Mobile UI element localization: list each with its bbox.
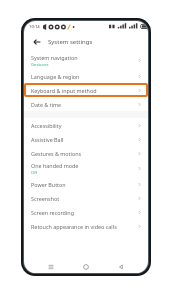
staticText: Retouch appearance in video calls — [31, 223, 117, 230]
button[interactable]: Keyboard & input method — [24, 83, 148, 97]
button[interactable]: Assistive Ball — [24, 132, 148, 146]
button[interactable]: Home — [78, 260, 94, 273]
staticText: Screenshot — [31, 195, 60, 202]
staticText: Gestures — [31, 62, 49, 68]
button[interactable]: Back — [113, 260, 129, 273]
staticText: System settings — [48, 38, 93, 46]
button[interactable]: One handed mode — [24, 160, 148, 177]
staticText: Gestures & motions — [31, 150, 82, 157]
button[interactable]: Power Button — [24, 177, 148, 191]
staticText: Assistive Ball — [31, 136, 64, 143]
staticText: Keyboard & input method — [31, 87, 97, 94]
button[interactable]: Accessibility — [24, 118, 148, 132]
staticText: One handed mode — [31, 162, 79, 169]
staticText: Accessibility — [31, 122, 62, 129]
button[interactable]: Gestures & motions — [24, 146, 148, 160]
staticText: Screen recording — [31, 209, 74, 216]
staticText: Off — [31, 170, 38, 176]
button[interactable]: Back — [30, 35, 44, 49]
staticText: Date & time — [31, 101, 62, 108]
button[interactable]: Retouch appearance in video calls — [24, 219, 148, 233]
staticText: Language & region — [31, 73, 80, 80]
button[interactable]: Screen recording — [24, 205, 148, 219]
staticText: System navigation — [31, 54, 78, 61]
button[interactable]: Recents — [43, 260, 59, 273]
staticText: 10:14 — [29, 24, 40, 30]
button[interactable]: Date & time — [24, 97, 148, 111]
staticText: Power Button — [31, 181, 66, 188]
button[interactable]: Screenshot — [24, 191, 148, 205]
button[interactable]: System navigation — [24, 52, 148, 69]
button[interactable]: Language & region — [24, 69, 148, 83]
